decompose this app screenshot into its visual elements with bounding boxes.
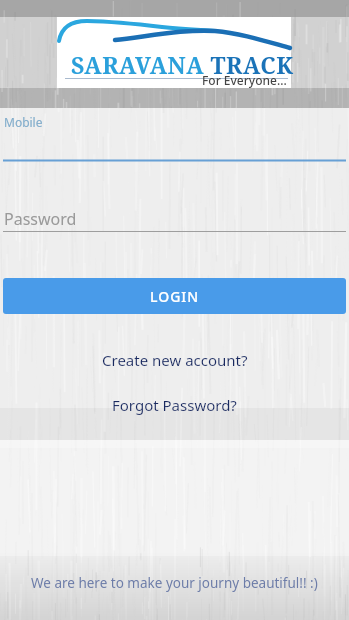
staticText: Forgot Password? [112, 395, 237, 415]
staticText: Mobile [4, 114, 43, 130]
staticText: We are here to make your journy beautifu… [31, 574, 318, 592]
staticText: For Everyone... [202, 72, 287, 88]
staticText: SARAVANA TRACK [71, 49, 294, 80]
staticText: Create new account? [102, 350, 248, 370]
staticText: Password [4, 208, 77, 230]
button[interactable]: Forgot Password? [106, 389, 243, 421]
button[interactable]: LOGIN [3, 278, 346, 314]
staticText: LOGIN [150, 287, 200, 306]
button[interactable]: Create new account? [96, 344, 254, 376]
